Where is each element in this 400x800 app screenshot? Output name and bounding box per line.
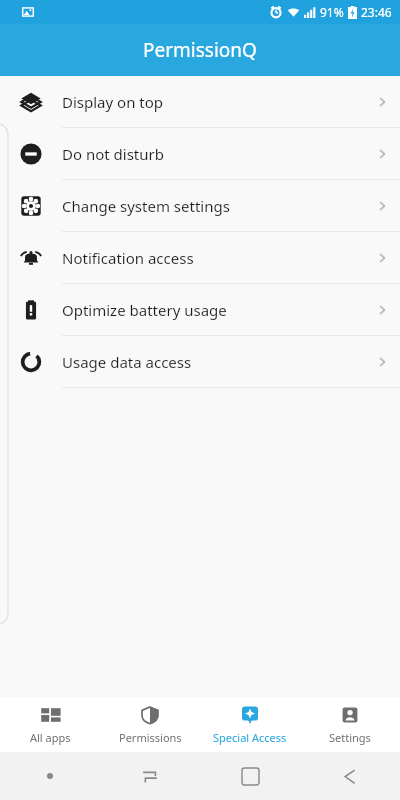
- button[interactable]: Display on top: [0, 76, 400, 127]
- staticText: Do not disturb: [62, 144, 164, 164]
- button[interactable]: Notification access: [0, 232, 400, 283]
- staticText: Special Access: [213, 730, 287, 745]
- staticText: Permissions: [119, 730, 182, 745]
- button[interactable]: Back: [300, 752, 400, 800]
- button[interactable]: Optimize battery usage: [0, 284, 400, 335]
- button[interactable]: Do not disturb: [0, 128, 400, 179]
- staticText: 23:46: [361, 4, 392, 20]
- button[interactable]: All apps: [0, 705, 100, 745]
- staticText: Settings: [329, 730, 371, 745]
- button[interactable]: Change system settings: [0, 180, 400, 231]
- staticText: 91%: [320, 4, 344, 20]
- staticText: PermissionQ: [143, 37, 257, 63]
- button[interactable]: Recents: [100, 752, 200, 800]
- staticText: All apps: [30, 730, 71, 745]
- staticText: Optimize battery usage: [62, 300, 227, 320]
- button[interactable]: Home: [200, 752, 300, 800]
- button[interactable]: Usage data access: [0, 336, 400, 387]
- staticText: Display on top: [62, 92, 164, 112]
- button[interactable]: Special Access: [200, 705, 300, 745]
- staticText: Usage data access: [62, 352, 192, 372]
- button[interactable]: Permissions: [100, 705, 200, 745]
- staticText: Notification access: [62, 248, 194, 268]
- staticText: Change system settings: [62, 196, 230, 216]
- button[interactable]: Settings: [300, 705, 400, 745]
